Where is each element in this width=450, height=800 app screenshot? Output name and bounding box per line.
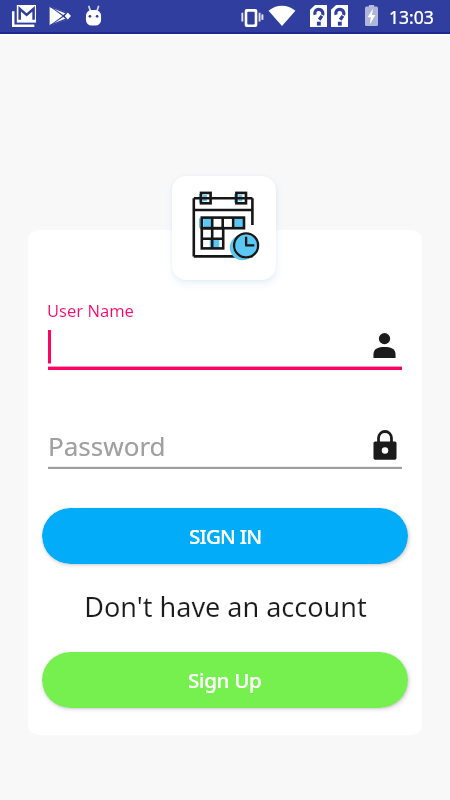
staticText: Sign Up [188, 666, 262, 694]
button[interactable]: SIGN IN [42, 508, 408, 564]
button[interactable]: Password visibility [373, 430, 397, 460]
staticText: Don't have an account [84, 588, 367, 624]
button[interactable]: Don't have an account [28, 588, 422, 624]
button[interactable] [48, 329, 402, 370]
button[interactable]: Sign Up [42, 652, 408, 708]
button[interactable]: Password [48, 429, 402, 469]
staticText: User Name [47, 299, 134, 321]
staticText: Password [48, 428, 166, 463]
staticText: SIGN IN [189, 522, 262, 550]
button[interactable]: Account [373, 333, 396, 358]
staticText: 13:03 [389, 5, 434, 29]
